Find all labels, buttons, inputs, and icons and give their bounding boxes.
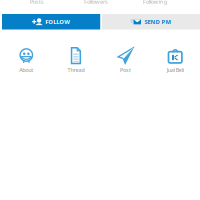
button[interactable]: SEND PM [102, 14, 200, 29]
staticText: Thread [67, 66, 84, 74]
staticText: Followers [84, 0, 108, 5]
button[interactable]: About [1, 47, 51, 74]
staticText: SEND PM [144, 18, 171, 26]
staticText: About [19, 66, 33, 74]
button[interactable]: Thread [51, 47, 101, 74]
button[interactable]: FOLLOW [2, 14, 100, 29]
staticText: Jual Beli [167, 66, 184, 74]
button[interactable]: Post [101, 47, 150, 74]
staticText: Post [120, 66, 131, 74]
staticText: FOLLOW [45, 18, 70, 26]
button[interactable]: Jual Beli [150, 47, 200, 74]
staticText: Following [143, 0, 168, 5]
staticText: Posts [30, 0, 44, 5]
